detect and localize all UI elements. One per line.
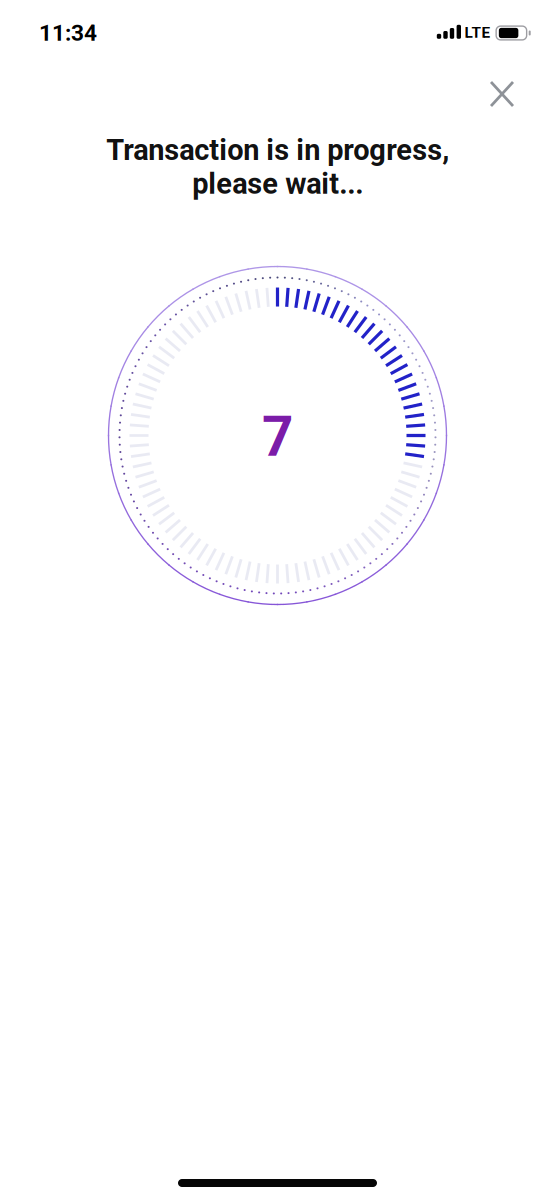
- staticText: LTE: [464, 23, 490, 41]
- button[interactable]: Close: [480, 71, 524, 117]
- staticText: 11:34: [39, 20, 97, 46]
- staticText: 7: [262, 405, 293, 469]
- staticText: Transaction is in progress, please wait.…: [106, 133, 449, 201]
